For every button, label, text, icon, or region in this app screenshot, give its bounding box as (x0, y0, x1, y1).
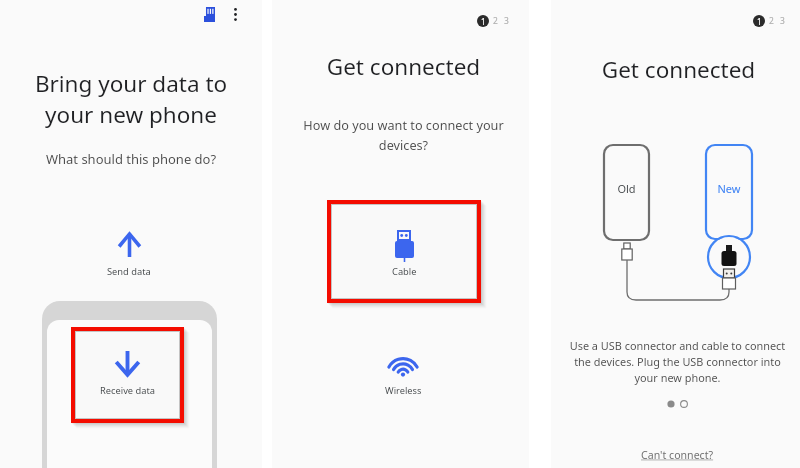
staticText: 2 (769, 15, 774, 27)
staticText: Get connected (275, 51, 532, 82)
staticText: 1 (757, 16, 762, 27)
button[interactable]: SD card (197, 2, 221, 26)
staticText: 1 (481, 16, 486, 27)
button[interactable]: Send data (79, 232, 179, 278)
staticText: 3 (504, 15, 509, 27)
staticText: Send data (107, 265, 151, 278)
staticText: Cable (392, 265, 417, 278)
button[interactable]: More options (223, 2, 247, 26)
staticText: Wireless (385, 384, 422, 397)
staticText: 3 (780, 15, 785, 27)
staticText: Can't connect? (641, 448, 714, 462)
staticText: How do you want to connect your devices? (275, 116, 532, 154)
staticText: What should this phone do? (0, 150, 262, 168)
staticText: Use a USB connector and cable to connect… (553, 338, 800, 385)
staticText: New (706, 181, 752, 196)
button[interactable]: Can't connect? (637, 447, 718, 463)
button[interactable]: Wireless (355, 353, 451, 397)
button[interactable]: Receive data (76, 332, 179, 418)
staticText: 2 (493, 15, 498, 27)
staticText: Old (604, 181, 649, 196)
button[interactable]: Cable (332, 205, 476, 298)
staticText: Receive data (100, 384, 156, 397)
staticText: Bring your data to your new phone (0, 68, 262, 130)
staticText: Get connected (554, 54, 800, 85)
